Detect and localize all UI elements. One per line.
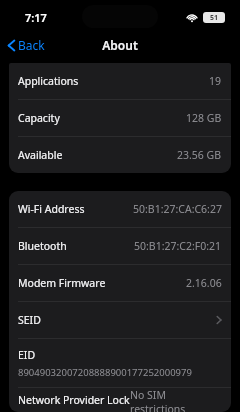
staticText: 128 GB [186, 111, 222, 125]
staticText: No SIM restrictions [130, 388, 222, 412]
staticText: 2.16.06 [186, 276, 222, 290]
staticText: Wi-Fi Address [18, 202, 85, 216]
button[interactable]: Capacity [9, 100, 231, 137]
staticText: 19 [209, 74, 222, 88]
button[interactable]: SEID [9, 302, 231, 339]
button[interactable]: Wi-Fi Address [9, 191, 231, 228]
button[interactable]: Network Provider Lock [9, 388, 231, 412]
staticText: Capacity [18, 111, 60, 125]
button[interactable]: Bluetooth [9, 228, 231, 265]
staticText: EID [18, 348, 36, 362]
staticText: Available [18, 148, 63, 162]
staticText: 51 [210, 13, 219, 23]
staticText: 50:B1:27:C2:F0:21 [134, 239, 222, 253]
staticText: About [102, 37, 138, 53]
button[interactable]: EID [9, 339, 231, 388]
staticText: 50:B1:27:CA:C6:27 [133, 202, 222, 216]
staticText: Applications [18, 74, 79, 88]
button[interactable]: Applications [9, 63, 231, 100]
staticText: 23.56 GB [177, 148, 222, 162]
staticText: Bluetooth [18, 239, 67, 253]
staticText: 7:17 [25, 10, 47, 25]
button[interactable]: Modem Firmware [9, 265, 231, 302]
button[interactable]: Available [9, 137, 231, 173]
button[interactable]: Back [0, 34, 51, 56]
staticText: Modem Firmware [18, 276, 106, 290]
staticText: Network Provider Lock [18, 393, 130, 407]
staticText: Back [18, 37, 45, 53]
staticText: SEID [18, 313, 41, 327]
other: Open SEID details [216, 315, 222, 325]
staticText: 89049032007208888900177252000979 [18, 366, 192, 379]
